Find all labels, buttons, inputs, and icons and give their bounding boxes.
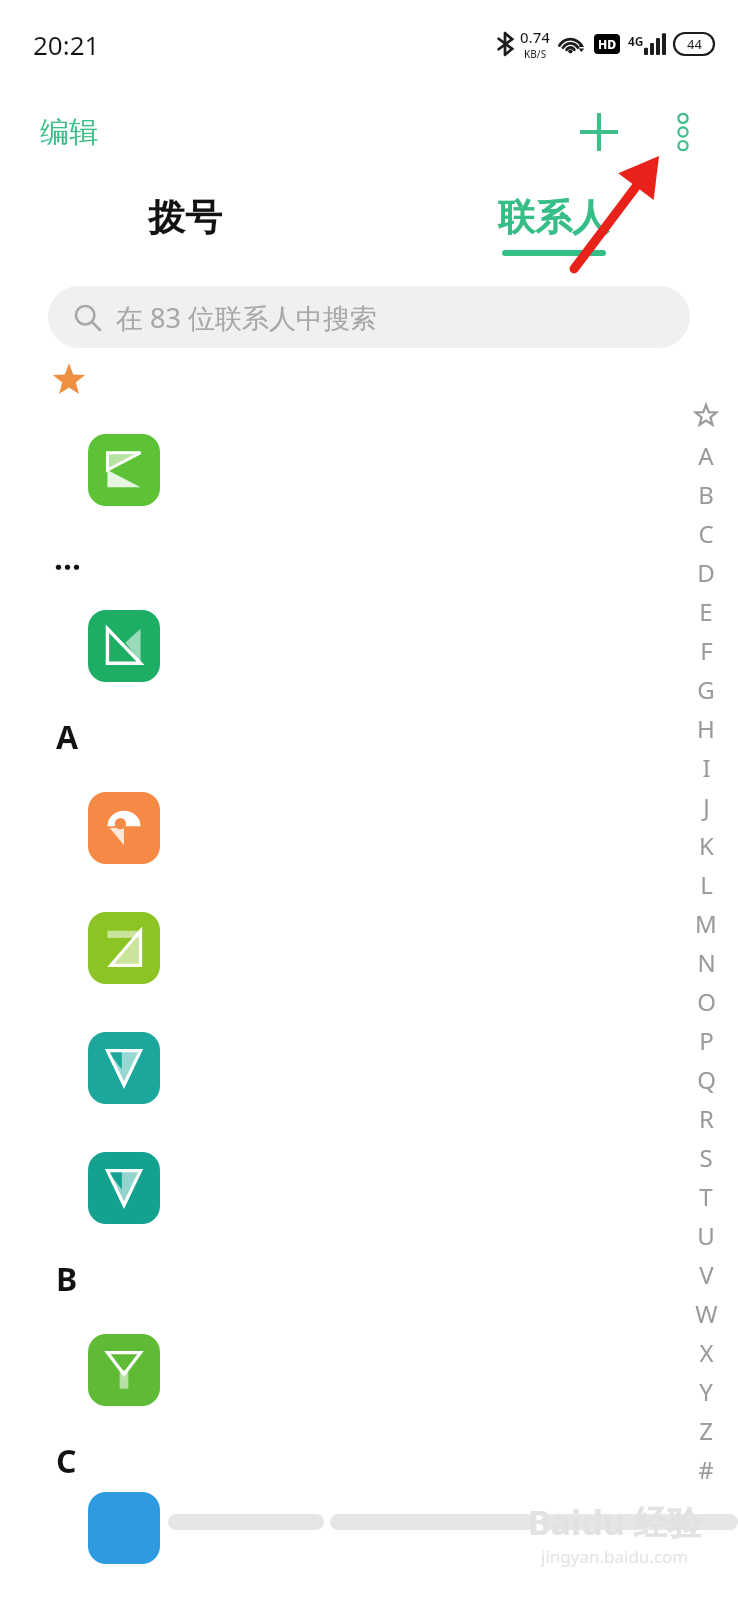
staticText: A [56, 715, 79, 759]
button[interactable]: More options [646, 95, 720, 169]
staticText: T [699, 1180, 713, 1213]
staticText: P [699, 1024, 714, 1057]
button[interactable]: Contact avatar [0, 768, 738, 888]
staticText: F [700, 634, 713, 667]
staticText: jingyan.baidu.com [541, 1545, 689, 1568]
staticText: O [697, 985, 716, 1018]
button[interactable]: Contact avatar [88, 912, 160, 984]
button[interactable]: 拨号 [0, 176, 369, 276]
staticText: # [698, 1453, 714, 1486]
button[interactable]: Alphabet index [678, 404, 734, 1489]
button[interactable]: Contact avatar [0, 888, 738, 1008]
button[interactable]: Contact avatar [0, 1310, 738, 1430]
staticText: S [699, 1141, 713, 1174]
staticText: 拨号 [148, 194, 222, 241]
button[interactable]: Contact avatar [88, 792, 160, 864]
staticText: B [56, 1257, 78, 1301]
button[interactable]: Contact avatar [88, 434, 160, 506]
staticText: M [695, 907, 717, 940]
button[interactable]: Contact avatar [0, 1128, 738, 1248]
staticText: X [699, 1336, 714, 1369]
staticText: 44 [687, 35, 702, 53]
button[interactable]: Add contact [562, 95, 636, 169]
staticText: G [697, 673, 715, 706]
staticText: K [699, 829, 714, 862]
button[interactable]: Contact avatar [88, 610, 160, 682]
staticText: V [699, 1258, 714, 1291]
staticText: Z [699, 1414, 713, 1447]
staticText: Baidu 经验 [528, 1499, 702, 1545]
staticText: KB/S [524, 47, 547, 61]
staticText: J [703, 790, 710, 823]
staticText: ... [54, 536, 81, 580]
staticText: B [698, 478, 714, 511]
staticText: H [697, 712, 715, 745]
button[interactable]: Contact avatar [88, 1032, 160, 1104]
staticText: Y [699, 1375, 713, 1408]
button[interactable]: Contact avatar [0, 410, 738, 530]
staticText: L [700, 868, 713, 901]
staticText: N [697, 946, 716, 979]
staticText: 在 83 位联系人中搜索 [116, 299, 377, 336]
button[interactable]: Contact avatar [0, 586, 738, 706]
staticText: D [697, 556, 715, 589]
staticText: R [699, 1102, 714, 1135]
staticText: E [699, 595, 713, 628]
staticText: 联系人 [498, 194, 609, 241]
staticText: Q [697, 1063, 716, 1096]
button[interactable]: 在 83 位联系人中搜索 [48, 286, 690, 348]
staticText: 4G [628, 33, 644, 49]
staticText: I [702, 751, 711, 784]
staticText: W [695, 1297, 718, 1330]
staticText: U [697, 1219, 715, 1252]
staticText: C [56, 1439, 77, 1483]
staticText: HD [598, 36, 616, 52]
staticText: 0.74 [520, 27, 550, 47]
button[interactable]: 编辑 [0, 100, 138, 165]
staticText: 编辑 [40, 114, 98, 151]
button[interactable]: 联系人 [369, 176, 738, 276]
button[interactable]: Contact avatar [88, 1152, 160, 1224]
staticText: 20:21 [33, 27, 100, 62]
button[interactable]: Contact avatar [88, 1334, 160, 1406]
button[interactable]: Contact avatar [0, 1008, 738, 1128]
staticText: C [698, 517, 714, 550]
staticText: A [698, 439, 714, 472]
